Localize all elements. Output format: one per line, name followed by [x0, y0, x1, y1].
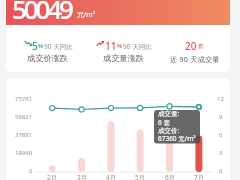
staticText: 50049 — [12, 0, 71, 26]
staticText: 37881 — [15, 131, 33, 139]
staticText: 20 — [185, 39, 197, 53]
staticText: 元/m² — [77, 10, 96, 19]
staticText: 4月 — [106, 173, 117, 180]
staticText: 18940 — [15, 149, 33, 157]
button[interactable]: 11 — [95, 36, 165, 68]
staticText: 5 — [32, 39, 38, 53]
staticText: 近 90 天成交量 — [170, 54, 220, 64]
staticText: % — [38, 42, 44, 50]
button[interactable]: 5 — [20, 36, 90, 68]
staticText: 5月 — [135, 173, 146, 180]
button[interactable] — [6, 0, 230, 25]
staticText: 成交量: — [158, 109, 180, 118]
staticText: 11 — [105, 39, 117, 53]
staticText: 90 天同比 — [44, 42, 73, 51]
staticText: 6 — [219, 131, 223, 139]
staticText: 2月 — [47, 173, 58, 180]
staticText: 套 — [198, 42, 204, 50]
staticText: 9 — [219, 113, 223, 121]
staticText: % — [117, 42, 123, 50]
button[interactable]: 20 — [166, 36, 228, 68]
staticText: 3 — [219, 149, 223, 157]
staticText: 成交价: — [158, 126, 180, 135]
staticText: 成交价涨跌 — [27, 53, 68, 63]
staticText: 0 — [29, 167, 33, 175]
staticText: 3月 — [77, 173, 88, 180]
staticText: 0 — [219, 167, 223, 175]
staticText: 75761 — [15, 95, 33, 103]
staticText: 67360 元/m² — [158, 134, 196, 143]
staticText: 6月 — [165, 173, 176, 180]
button[interactable]: 75761 — [6, 78, 230, 180]
staticText: 56821 — [15, 113, 33, 121]
staticText: 90 天同比 — [123, 42, 152, 51]
staticText: 成交量涨跌 — [103, 53, 144, 63]
staticText: 6 套 — [158, 118, 170, 127]
staticText: 7月 — [194, 173, 205, 180]
staticText: 12 — [217, 95, 224, 103]
